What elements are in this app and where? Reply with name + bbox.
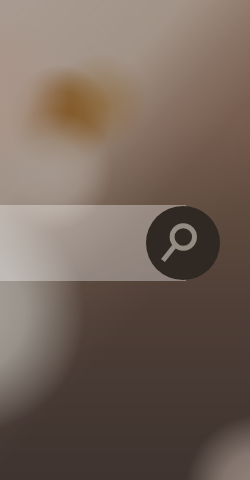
button[interactable] [0,205,186,281]
button[interactable]: Search [146,206,220,280]
